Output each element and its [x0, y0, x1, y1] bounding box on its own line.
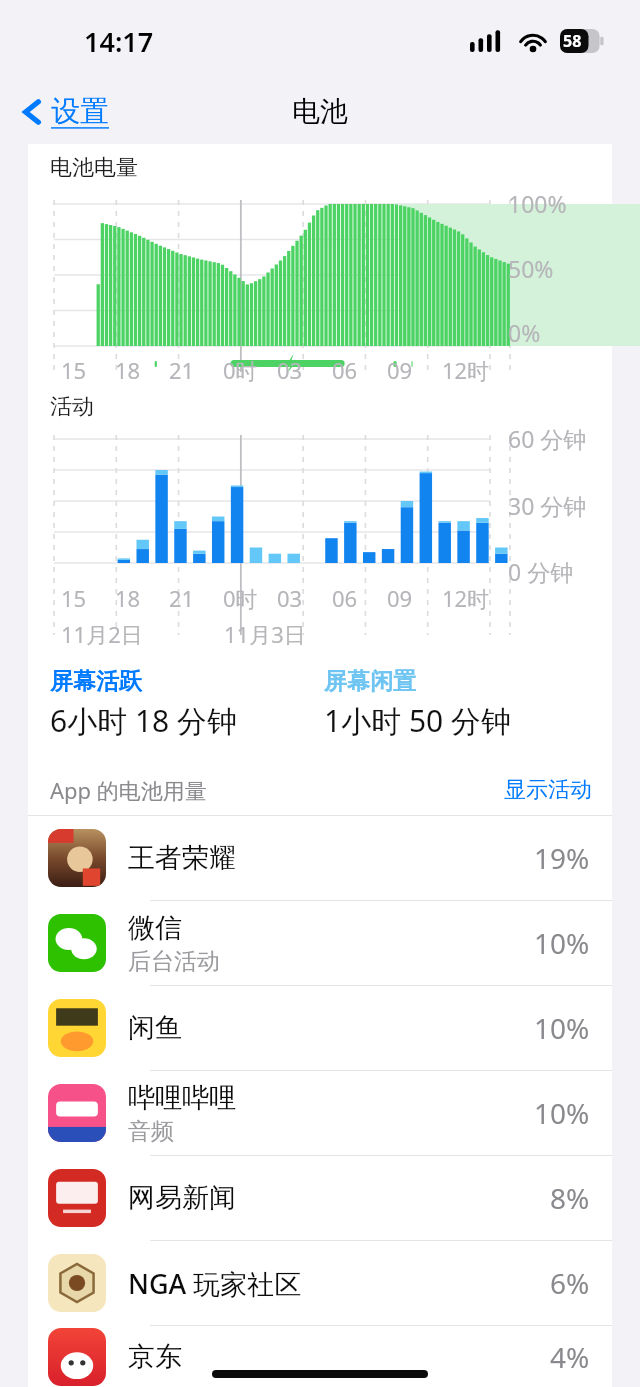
staticText: 58	[563, 30, 582, 52]
staticText: 03	[277, 355, 303, 385]
staticText: 0时	[223, 355, 258, 385]
button[interactable]: 微信	[28, 901, 612, 985]
staticText: 6小时 18 分钟	[50, 700, 238, 741]
staticText: 4%	[550, 1338, 590, 1376]
staticText: NGA 玩家社区	[128, 1265, 302, 1302]
button[interactable]: 显示活动	[504, 776, 592, 804]
staticText: 设置	[51, 93, 109, 130]
staticText: 18	[115, 583, 141, 613]
staticText: 显示活动	[504, 776, 592, 804]
staticText: 电池电量	[50, 154, 138, 182]
staticText: 09	[387, 355, 413, 385]
staticText: 网易新闻	[128, 1181, 236, 1215]
staticText: 10%	[534, 1009, 590, 1047]
staticText: 微信	[128, 911, 182, 945]
staticText: 0 分钟	[508, 556, 574, 587]
staticText: 09	[387, 583, 413, 613]
button[interactable]: 闲鱼	[28, 986, 612, 1070]
button[interactable]: 网易新闻	[28, 1156, 612, 1240]
staticText: 10%	[534, 924, 590, 962]
staticText: 0%	[508, 317, 541, 348]
staticText: 闲鱼	[128, 1011, 182, 1045]
staticText: 6%	[550, 1264, 590, 1302]
staticText: 06	[332, 583, 358, 613]
staticText: 1小时 50 分钟	[324, 700, 512, 741]
staticText: 11月3日	[224, 619, 306, 649]
staticText: 12时	[442, 583, 490, 613]
staticText: 100%	[508, 188, 567, 219]
staticText: 15	[61, 355, 87, 385]
staticText: 15	[61, 583, 87, 613]
staticText: 10%	[534, 1094, 590, 1132]
button[interactable]: 哔哩哔哩	[28, 1071, 612, 1155]
staticText: 屏幕活跃	[50, 667, 142, 696]
staticText: 21	[169, 583, 195, 613]
button[interactable]: 设置	[18, 87, 113, 136]
button[interactable]: 王者荣耀	[28, 816, 612, 900]
button[interactable]: 京东	[28, 1326, 612, 1387]
staticText: 8%	[550, 1179, 590, 1217]
staticText: 50%	[508, 253, 554, 284]
staticText: App 的电池用量	[50, 775, 207, 805]
staticText: 后台活动	[128, 947, 220, 976]
staticText: 60 分钟	[508, 423, 587, 454]
staticText: 14:17	[84, 23, 154, 60]
staticText: 11月2日	[61, 619, 143, 649]
staticText: 音频	[128, 1117, 174, 1146]
staticText: 哔哩哔哩	[128, 1081, 236, 1115]
staticText: 19%	[534, 839, 590, 877]
staticText: 03	[277, 583, 303, 613]
staticText: 京东	[128, 1340, 182, 1374]
staticText: 活动	[50, 393, 94, 421]
staticText: 30 分钟	[508, 490, 587, 521]
staticText: 12时	[442, 355, 490, 385]
staticText: 18	[115, 355, 141, 385]
staticText: 王者荣耀	[128, 841, 236, 875]
staticText: 21	[169, 355, 195, 385]
staticText: 电池	[292, 94, 348, 129]
button[interactable]: NGA 玩家社区	[28, 1241, 612, 1325]
staticText: 0时	[223, 583, 258, 613]
staticText: 06	[332, 355, 358, 385]
staticText: 屏幕闲置	[324, 667, 416, 696]
